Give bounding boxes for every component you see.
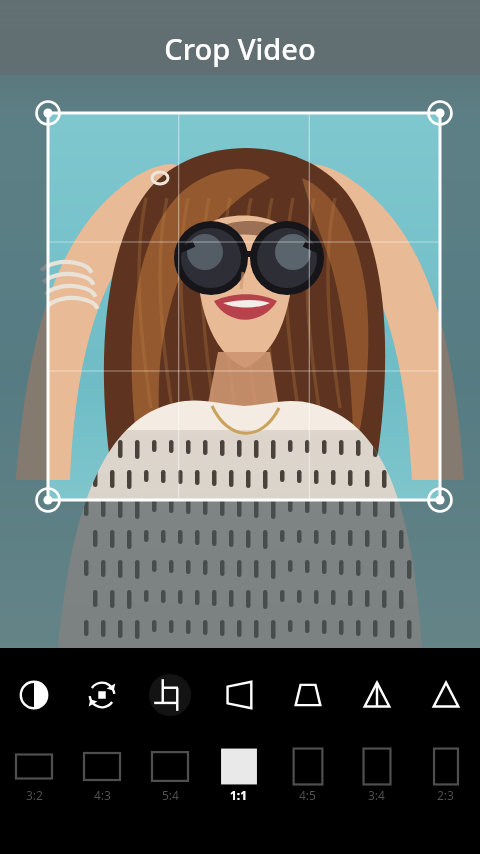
staticText: 3:2	[26, 787, 43, 803]
staticText: 1:1	[230, 787, 248, 803]
button[interactable]: Vertical perspective	[273, 648, 342, 742]
button[interactable]: 5:4	[136, 742, 204, 812]
button[interactable]: Horizontal perspective	[204, 648, 273, 742]
button[interactable]: 3:4	[342, 742, 411, 812]
staticText: 4:3	[94, 787, 111, 803]
staticText: Crop Video	[164, 29, 316, 68]
button[interactable]: 4:3	[68, 742, 136, 812]
button[interactable]: Crop	[136, 648, 204, 742]
button[interactable]: Rotate	[68, 648, 136, 742]
button[interactable]: 4:5	[273, 742, 342, 812]
button[interactable]: 2:3	[411, 742, 480, 812]
button[interactable]: Skew	[411, 648, 480, 742]
staticText: 5:4	[162, 787, 179, 803]
staticText: 3:4	[368, 787, 385, 803]
staticText: 4:5	[299, 787, 316, 803]
button[interactable]: 3:2	[0, 742, 68, 812]
button[interactable]: 1:1	[204, 742, 273, 812]
button[interactable]: Contrast	[0, 648, 68, 742]
button[interactable]: Mirror	[342, 648, 411, 742]
staticText: 2:3	[437, 787, 454, 803]
